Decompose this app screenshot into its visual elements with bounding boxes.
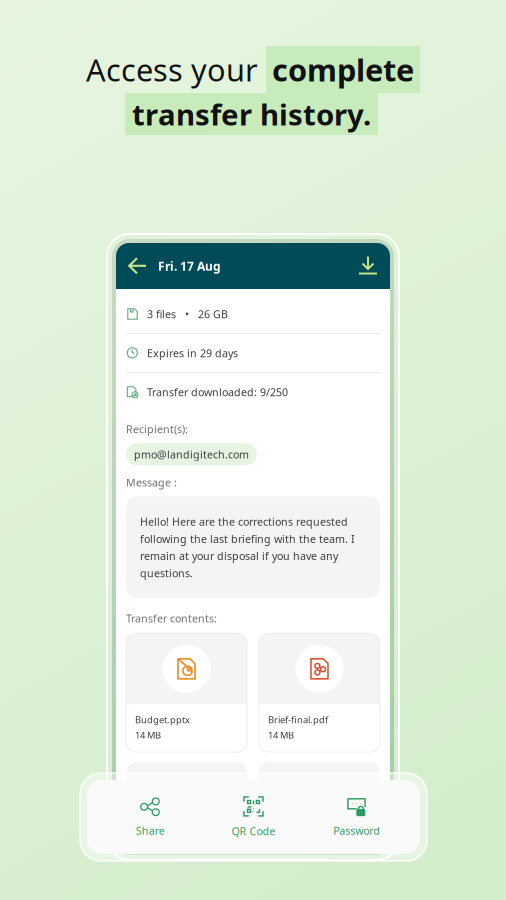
button[interactable]: QR Code	[202, 796, 305, 838]
staticText: pmo@landigitech.com	[134, 447, 249, 461]
staticText: Password	[333, 823, 380, 838]
staticText: Brief-final.pdf	[268, 713, 328, 726]
staticText: Budget.pptx	[135, 713, 190, 726]
staticText: Hello! Here are the corrections requeste…	[140, 514, 348, 529]
staticText: Access your	[86, 49, 266, 90]
staticText: 14 MB	[135, 729, 161, 741]
button[interactable]: Share	[98, 796, 202, 838]
staticText: 3 files • 26 GB	[147, 307, 228, 321]
staticText: Share	[136, 823, 165, 838]
staticText: Expires in 29 days	[147, 346, 238, 360]
staticText: Recipient(s):	[126, 422, 188, 436]
button[interactable]: Password	[305, 796, 408, 838]
staticText: 14 MB	[268, 729, 294, 741]
staticText: Transfer contents:	[126, 611, 217, 625]
staticText: complete	[272, 49, 414, 90]
staticText: transfer history.	[132, 94, 371, 133]
button[interactable]: Back	[116, 249, 147, 283]
staticText: Message :	[126, 475, 177, 489]
staticText: QR Code	[231, 824, 275, 838]
staticText: remain at your disposal if you have any	[140, 549, 338, 563]
staticText: Transfer downloaded: 9/250	[147, 385, 288, 399]
staticText: Fri. 17 Aug	[158, 258, 221, 274]
staticText: following the last briefing with the tea…	[140, 532, 355, 546]
button[interactable]: Download	[359, 248, 390, 283]
staticText: questions.	[140, 566, 193, 580]
